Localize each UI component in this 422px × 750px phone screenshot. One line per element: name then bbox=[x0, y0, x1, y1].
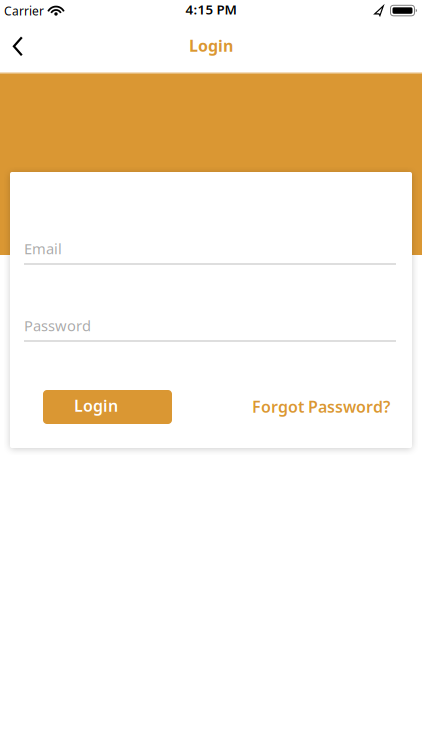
button[interactable]: Email bbox=[24, 236, 396, 265]
staticText: Login bbox=[189, 35, 233, 56]
staticText: Email bbox=[24, 239, 62, 258]
button[interactable]: Back bbox=[0, 22, 37, 70]
staticText: 4:15 PM bbox=[185, 0, 236, 18]
button[interactable]: Forgot Password? bbox=[252, 396, 390, 417]
staticText: Password bbox=[24, 316, 91, 335]
button[interactable]: Login bbox=[43, 390, 172, 424]
button[interactable]: Password bbox=[24, 313, 396, 342]
staticText: Carrier bbox=[4, 3, 44, 19]
staticText: Forgot Password? bbox=[252, 396, 390, 417]
staticText: Login bbox=[74, 395, 118, 416]
